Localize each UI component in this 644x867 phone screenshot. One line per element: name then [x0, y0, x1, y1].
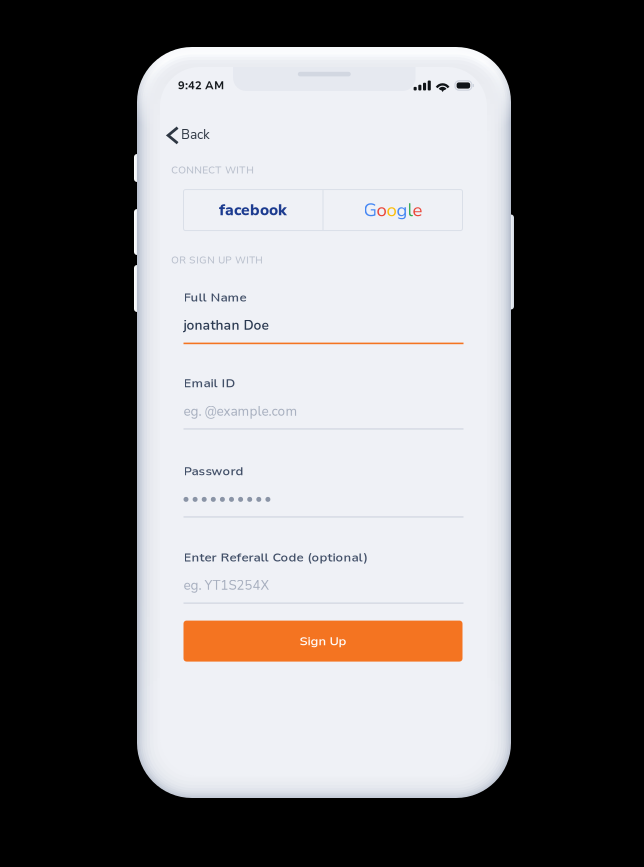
staticText: 9:42 AM [178, 78, 224, 93]
staticText: Email ID [183, 375, 235, 392]
button[interactable]: Sign Up [183, 621, 462, 662]
staticText: o [386, 197, 396, 223]
staticText: facebook [219, 199, 287, 221]
staticText: jonathan Doe [183, 316, 268, 334]
staticText: CONNECT WITH [171, 163, 254, 177]
staticText: e [412, 197, 422, 223]
staticText: OR SIGN UP WITH [171, 253, 263, 267]
staticText: Password [183, 463, 243, 480]
staticText: Back [181, 126, 210, 144]
staticText: o [376, 197, 386, 223]
staticText: Full Name [183, 289, 246, 306]
staticText: eg. @example.com [183, 403, 297, 420]
button[interactable]: G [323, 190, 462, 231]
staticText: Sign Up [299, 632, 346, 650]
staticText: l [407, 197, 412, 223]
button[interactable]: Back [160, 121, 222, 150]
staticText: g [396, 197, 407, 223]
button[interactable]: facebook [183, 190, 322, 231]
staticText: G [363, 197, 376, 223]
staticText: Enter Referall Code (optional) [183, 549, 367, 566]
staticText: eg. YT1S254X [183, 577, 269, 594]
